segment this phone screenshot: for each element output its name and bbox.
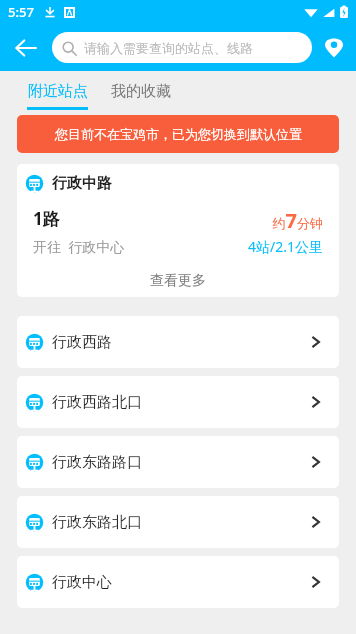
button[interactable]: 行政东路路口 <box>17 436 339 488</box>
staticText: 您目前不在宝鸡市，已为您切换到默认位置 <box>55 126 302 142</box>
button[interactable]: 附近站点 <box>27 71 88 110</box>
staticText: 查看更多 <box>150 272 206 290</box>
button[interactable]: Back <box>0 24 52 71</box>
staticText: 行政中心 <box>52 573 112 592</box>
staticText: 行政西路北口 <box>52 393 142 412</box>
button[interactable]: 行政中路 <box>17 164 339 297</box>
staticText: 5:57 <box>8 3 34 21</box>
staticText: 行政东路路口 <box>52 453 142 472</box>
staticText: 请输入需要查询的站点、线路 <box>84 40 253 56</box>
staticText: 行政中路 <box>52 174 112 193</box>
staticText: 附近站点 <box>28 82 88 101</box>
button[interactable]: 行政中心 <box>17 556 339 608</box>
staticText: 约7分钟 <box>272 207 323 234</box>
button[interactable]: 您目前不在宝鸡市，已为您切换到默认位置 <box>17 115 339 153</box>
staticText: 开往 行政中心 <box>33 237 125 256</box>
button[interactable]: Location <box>312 26 356 70</box>
staticText: 我的收藏 <box>111 82 171 101</box>
button[interactable]: 请输入需要查询的站点、线路 <box>52 32 312 63</box>
button[interactable]: 行政西路 <box>17 316 339 368</box>
button[interactable]: 行政西路北口 <box>17 376 339 428</box>
button[interactable]: 我的收藏 <box>111 82 171 101</box>
staticText: 1路 <box>33 207 60 230</box>
staticText: 行政西路 <box>52 333 112 352</box>
button[interactable]: 行政东路北口 <box>17 496 339 548</box>
staticText: 4站/2.1公里 <box>248 237 323 256</box>
staticText: 行政东路北口 <box>52 513 142 532</box>
button[interactable]: 查看更多 <box>17 265 339 297</box>
